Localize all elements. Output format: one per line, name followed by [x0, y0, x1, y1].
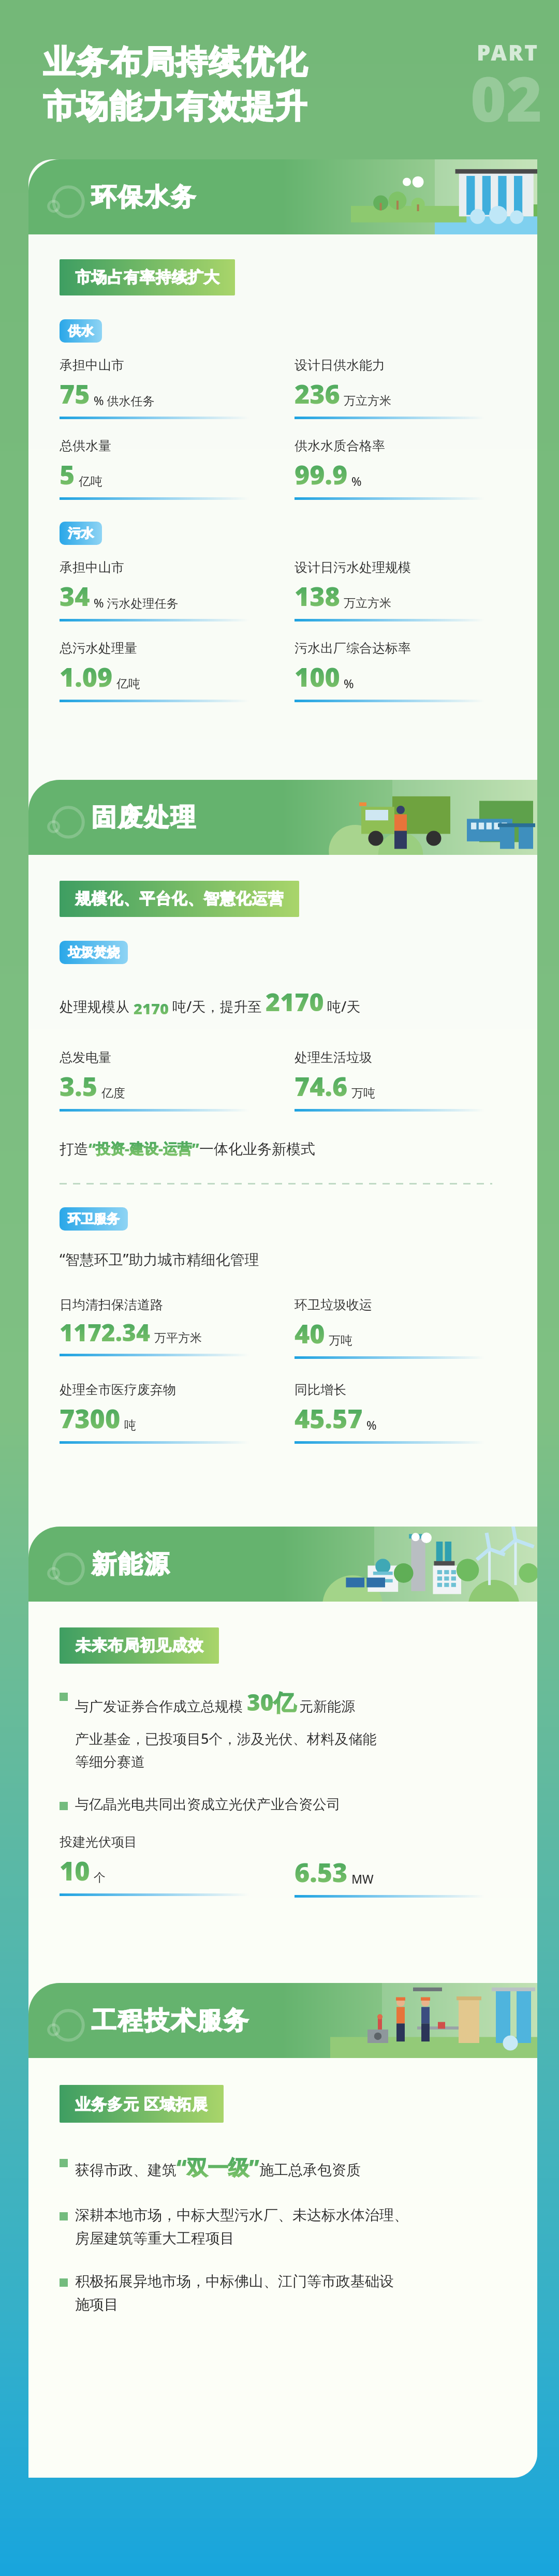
- staticText: 承担中山市: [60, 559, 124, 575]
- staticText: 深耕本地市场，中标大型污水厂、未达标水体治理、: [75, 2206, 408, 2224]
- button[interactable]: 污水: [60, 522, 102, 545]
- staticText: 设计日供水能力: [295, 357, 385, 373]
- staticText: 与广发证券合作成立总规模: [75, 1696, 247, 1715]
- staticText: 万立方米: [344, 393, 391, 408]
- staticText: 业务布局持续优化: [42, 42, 307, 82]
- staticText: 个: [94, 1870, 106, 1885]
- staticText: MW: [351, 1871, 374, 1887]
- staticText: “双一级”: [176, 2153, 259, 2181]
- staticText: 积极拓展异地市场，中标佛山、江门等市政基础设: [75, 2272, 394, 2290]
- button[interactable]: 积极拓展异地市场，中标佛山、江门等市政基础设: [60, 2272, 530, 2314]
- staticText: 投建光伏项目: [60, 1834, 137, 1850]
- button[interactable]: 新能源: [28, 1527, 537, 1602]
- staticText: 施项目: [75, 2296, 119, 2314]
- button[interactable]: 环保水务: [28, 159, 537, 234]
- button[interactable]: 规模化、平台化、智慧化运营: [60, 881, 299, 917]
- staticText: 垃圾焚烧: [68, 944, 120, 960]
- staticText: “智慧环卫”助力城市精细化管理: [60, 1249, 259, 1269]
- staticText: 等细分赛道: [75, 1753, 145, 1771]
- button[interactable]: 与亿晶光电共同出资成立光伏产业合资公司: [60, 1796, 530, 1813]
- staticText: 环保水务: [91, 182, 196, 213]
- staticText: 2170: [266, 985, 324, 1018]
- staticText: 承担中山市: [60, 357, 124, 373]
- button[interactable]: 固废处理: [28, 780, 537, 855]
- staticText: 同比增长: [295, 1382, 346, 1398]
- staticText: 供水水质合格率: [295, 438, 385, 454]
- button[interactable]: 与广发证券合作成立总规模: [60, 1686, 530, 1771]
- staticText: PART: [477, 37, 539, 67]
- staticText: 138: [295, 579, 340, 614]
- staticText: 45.57: [295, 1401, 363, 1436]
- staticText: 40: [295, 1316, 325, 1351]
- staticText: 固废处理: [91, 802, 196, 833]
- staticText: 吨/天，提升至: [169, 997, 266, 1016]
- staticText: 规模化、平台化、智慧化运营: [75, 889, 284, 909]
- staticText: 30亿: [247, 1686, 297, 1718]
- staticText: 一体化业务新模式: [199, 1140, 315, 1158]
- staticText: 供水: [68, 323, 94, 339]
- staticText: 打造: [60, 1140, 89, 1158]
- staticText: 污水出厂综合达标率: [295, 640, 411, 656]
- staticText: 万立方米: [344, 596, 391, 611]
- staticText: 房屋建筑等重大工程项目: [75, 2229, 234, 2247]
- staticText: 总发电量: [60, 1049, 111, 1065]
- staticText: 亿吨: [116, 676, 140, 691]
- staticText: 处理规模从: [60, 997, 134, 1016]
- staticText: 与亿晶光电共同出资成立光伏产业合资公司: [75, 1796, 341, 1813]
- button[interactable]: 业务多元 区域拓展: [60, 2085, 224, 2123]
- staticText: 污水: [68, 525, 94, 541]
- staticText: 市场能力有效提升: [42, 86, 307, 127]
- staticText: 万平方米: [154, 1330, 202, 1345]
- staticText: 236: [295, 376, 340, 411]
- staticText: 总污水处理量: [60, 640, 137, 656]
- staticText: 万吨: [351, 1086, 375, 1101]
- staticText: 6.53: [295, 1855, 348, 1890]
- staticText: 万吨: [329, 1333, 352, 1348]
- staticText: 环卫服务: [68, 1211, 120, 1227]
- button[interactable]: 垃圾焚烧: [60, 941, 128, 964]
- staticText: 吨: [124, 1418, 136, 1433]
- staticText: 获得市政、建筑: [75, 2161, 176, 2179]
- staticText: 产业基金，已投项目5个，涉及光伏、材料及储能: [75, 1729, 377, 1748]
- staticText: 施工总承包资质: [259, 2161, 361, 2179]
- staticText: 设计日污水处理规模: [295, 559, 411, 575]
- staticText: 1172.34: [60, 1316, 151, 1349]
- staticText: 74.6: [295, 1069, 348, 1104]
- staticText: %: [351, 473, 362, 489]
- button[interactable]: 获得市政、建筑: [60, 2153, 530, 2181]
- staticText: 99.9: [295, 457, 348, 492]
- staticText: 吨/天: [327, 997, 361, 1016]
- staticText: 5: [60, 457, 75, 492]
- staticText: 元新能源: [299, 1698, 355, 1715]
- staticText: 未来布局初见成效: [75, 1636, 203, 1655]
- button[interactable]: 环卫服务: [60, 1207, 128, 1231]
- staticText: 34: [60, 579, 90, 614]
- button[interactable]: 市场占有率持续扩大: [60, 259, 235, 295]
- staticText: 业务多元 区域拓展: [75, 2093, 208, 2114]
- staticText: %: [366, 1417, 377, 1433]
- staticText: 日均清扫保洁道路: [60, 1297, 163, 1313]
- staticText: 1.09: [60, 659, 113, 694]
- staticText: 总供水量: [60, 438, 111, 454]
- staticText: % 污水处理任务: [94, 595, 179, 611]
- button[interactable]: 未来布局初见成效: [60, 1627, 219, 1664]
- button[interactable]: 打造: [60, 1138, 315, 1158]
- staticText: 工程技术服务: [91, 2005, 249, 2036]
- staticText: 7300: [60, 1401, 121, 1436]
- staticText: 处理生活垃圾: [295, 1049, 372, 1065]
- staticText: % 供水任务: [94, 392, 155, 408]
- staticText: 3.5: [60, 1069, 98, 1104]
- staticText: 亿吨: [79, 474, 102, 489]
- button[interactable]: 深耕本地市场，中标大型污水厂、未达标水体治理、: [60, 2206, 530, 2247]
- button[interactable]: 供水: [60, 319, 102, 343]
- staticText: “投资-建设-运营”: [89, 1138, 199, 1158]
- staticText: 2170: [134, 998, 169, 1018]
- staticText: 10: [60, 1853, 90, 1888]
- staticText: 环卫垃圾收运: [295, 1297, 372, 1313]
- staticText: 市场占有率持续扩大: [75, 268, 219, 287]
- staticText: 新能源: [91, 1549, 170, 1580]
- staticText: %: [344, 675, 354, 691]
- button[interactable]: 工程技术服务: [28, 1983, 537, 2058]
- staticText: 02: [470, 56, 542, 140]
- staticText: 100: [295, 659, 340, 694]
